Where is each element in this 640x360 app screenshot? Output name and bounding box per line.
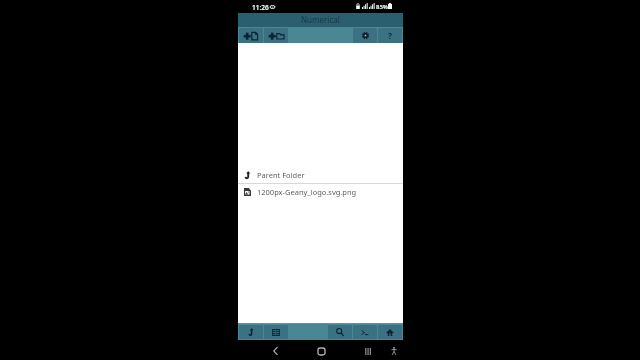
staticText: ?	[388, 30, 393, 42]
button[interactable]: Home	[378, 325, 402, 339]
button[interactable]: Up one level	[239, 325, 263, 339]
button[interactable]: Recents	[360, 343, 376, 359]
button[interactable]: 1200px-Geany_logo.svg.png	[238, 184, 403, 200]
staticText: 11:26	[252, 3, 269, 12]
staticText: Parent Folder	[257, 170, 305, 180]
button[interactable]: Terminal	[353, 325, 377, 339]
button[interactable]: Back	[267, 343, 283, 359]
button[interactable]: New folder	[264, 28, 288, 43]
staticText: Numerical	[301, 14, 340, 25]
button[interactable]: Home	[313, 343, 329, 359]
staticText: 85%	[376, 3, 388, 11]
button[interactable]: New file	[239, 28, 263, 43]
button[interactable]: Accessibility	[386, 343, 402, 359]
button[interactable]: Search	[328, 325, 352, 339]
button[interactable]: Help	[378, 28, 402, 43]
staticText: 1200px-Geany_logo.svg.png	[257, 187, 357, 197]
button[interactable]: File list	[264, 325, 288, 339]
button[interactable]: Parent Folder	[238, 167, 403, 183]
button[interactable]: Settings	[353, 28, 377, 43]
